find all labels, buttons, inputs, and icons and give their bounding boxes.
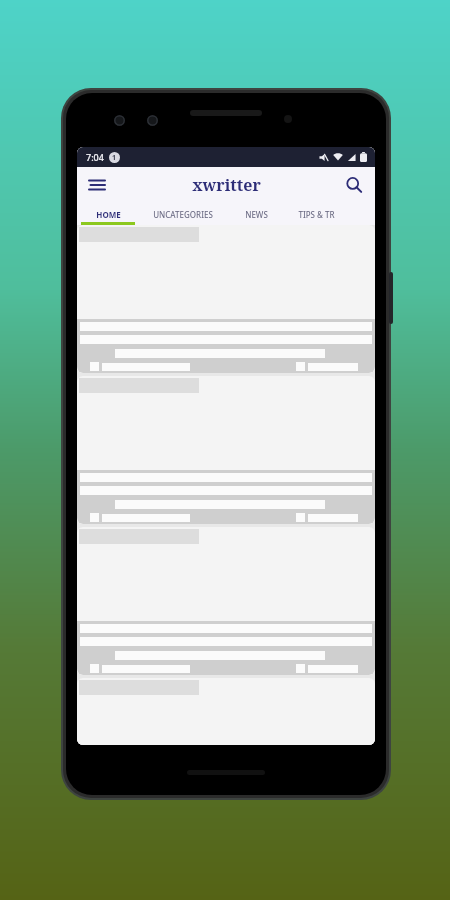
button[interactable]: NEWS [227,203,285,225]
staticText: 1 [112,153,117,163]
button[interactable] [77,376,375,524]
staticText: TIPS & TR [298,209,335,220]
button[interactable]: Search [339,170,369,200]
button[interactable]: TIPS & TR [285,203,347,225]
staticText: NEWS [245,209,268,220]
button[interactable] [77,225,375,373]
staticText: 7:04 [86,151,104,163]
staticText: HOME [96,209,121,220]
button[interactable]: UNCATEGORIES [139,203,227,225]
button[interactable] [77,527,375,675]
button[interactable]: Open navigation menu [81,169,113,201]
button[interactable]: HOME [77,203,139,225]
staticText: xwritter [192,174,261,196]
staticText: UNCATEGORIES [153,209,213,220]
button[interactable] [77,678,375,745]
